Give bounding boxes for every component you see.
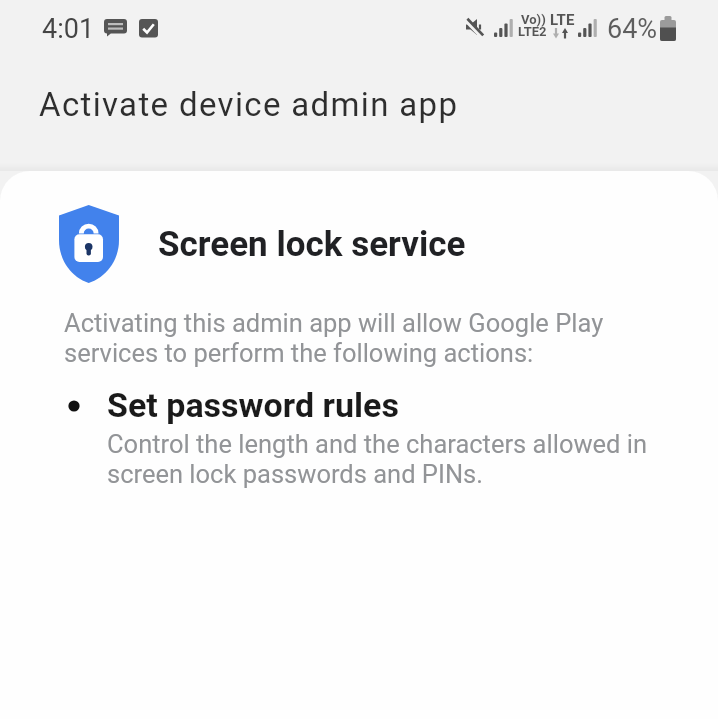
staticText: 4:01	[42, 13, 95, 45]
staticText: LTE2	[518, 24, 547, 39]
staticText: 64%	[607, 13, 658, 45]
staticText: LTE	[550, 11, 575, 29]
staticText: Activating this admin app will allow Goo…	[64, 308, 604, 368]
button[interactable]: Screen lock service	[0, 171, 718, 719]
staticText: Vo))	[521, 12, 546, 27]
staticText: Activate device admin app	[39, 85, 459, 124]
staticText: Set password rules	[107, 385, 399, 425]
staticText: Screen lock service	[158, 224, 466, 265]
staticText: Control the length and the characters al…	[107, 429, 648, 489]
